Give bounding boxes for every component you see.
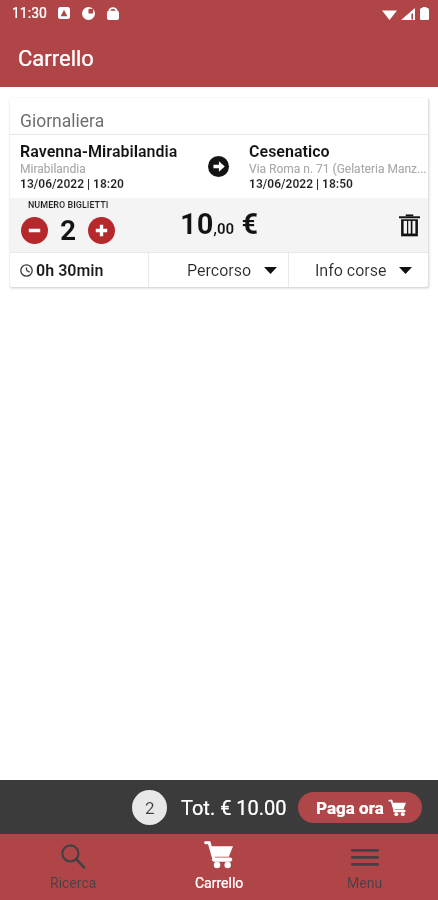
staticText: Paga ora [316,798,384,818]
staticText: Info corse [315,261,387,280]
staticText: Carrello [195,875,244,891]
button[interactable]: Percorso [149,253,288,287]
staticText: Percorso [187,261,252,280]
button[interactable]: Carrello [146,834,292,900]
staticText: 2 [60,214,77,247]
staticText: 10,00 € [180,207,259,241]
staticText: 2 [145,798,155,818]
staticText: NUMERO BIGLIETTI [28,200,109,211]
staticText: Carrello [18,46,94,72]
button[interactable]: 0h 30min [10,253,148,287]
button[interactable]: Info corse [289,253,428,287]
staticText: Ravenna-Mirabilandia [20,142,178,161]
staticText: Tot. € 10.00 [181,796,287,819]
staticText: 0h 30min [36,261,104,280]
button[interactable]: Ricerca [0,834,146,900]
staticText: Mirabilandia [20,162,86,176]
staticText: Menu [347,875,383,891]
button[interactable]: Rimuovi biglietto [21,217,48,244]
staticText: 11:30 [12,5,47,21]
staticText: 13/06/2022 | 18:50 [249,177,353,191]
staticText: Giornaliera [20,111,105,132]
button[interactable]: Menu [292,834,438,900]
button[interactable]: Aggiungi biglietto [88,217,115,244]
staticText: Ricerca [50,875,97,891]
button[interactable]: Elimina biglietto [392,208,426,242]
staticText: Via Roma n. 71 (Gelateria Manz... [249,162,427,176]
button[interactable]: Paga ora [298,792,422,823]
staticText: Cesenatico [249,142,330,161]
staticText: 13/06/2022 | 18:20 [20,177,124,191]
